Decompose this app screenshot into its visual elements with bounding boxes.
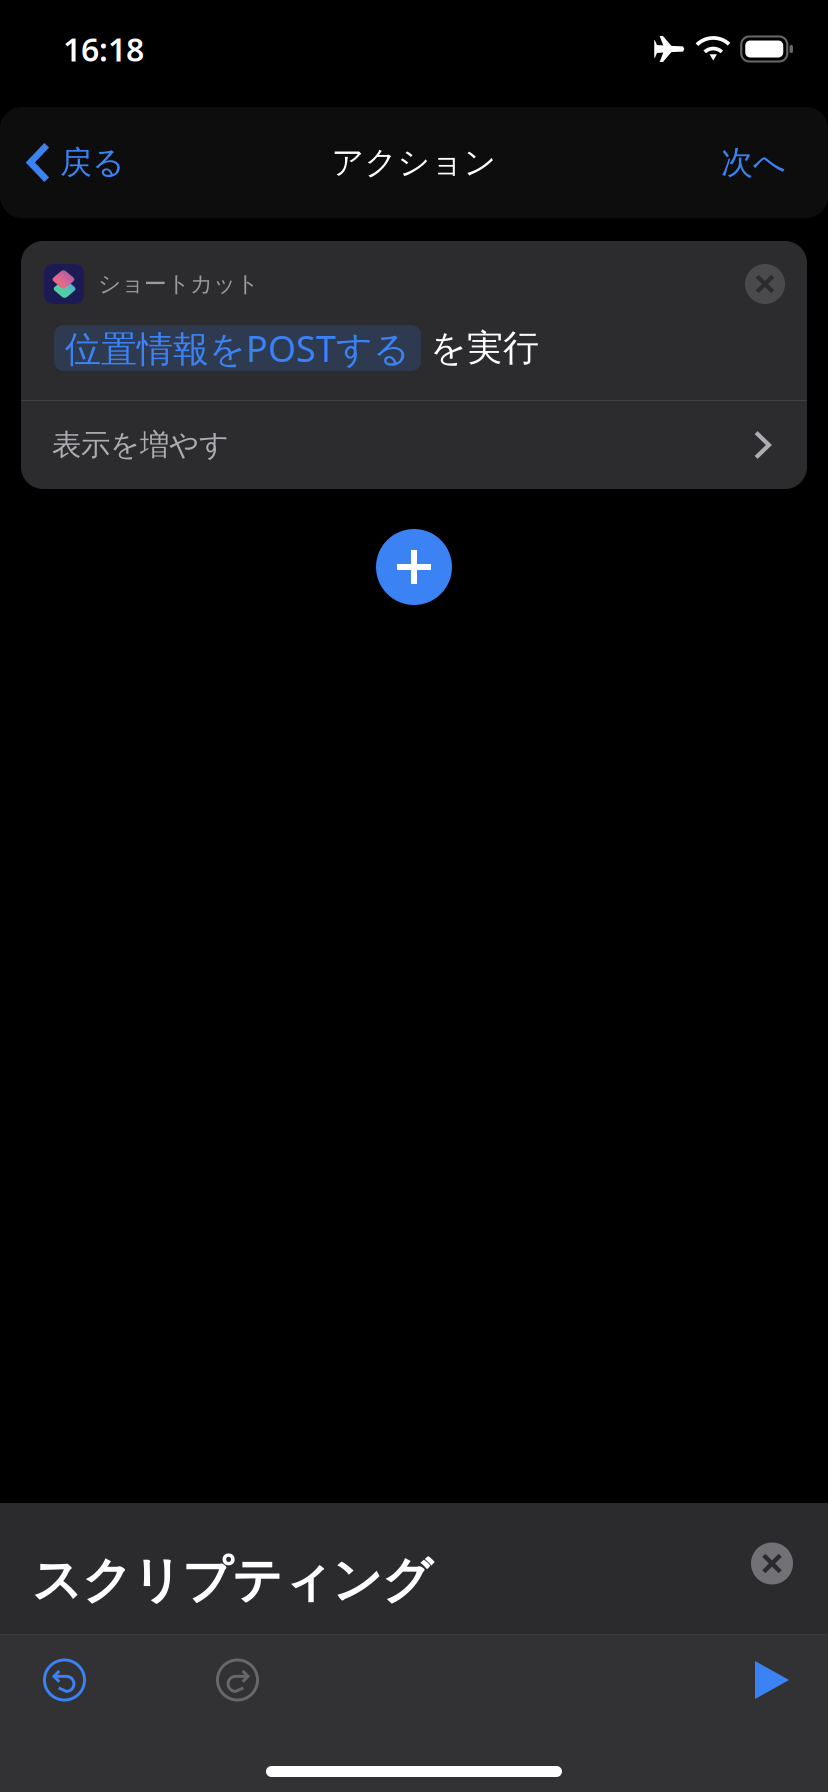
staticText: 16:18 (63, 28, 144, 70)
button[interactable]: 表示を増やす (21, 401, 807, 489)
button[interactable]: 取り消す (31, 1646, 98, 1713)
staticText: スクリプティング (32, 1550, 432, 1611)
staticText: 戻る (60, 143, 125, 182)
staticText: 表示を増やす (52, 427, 229, 463)
button[interactable]: 戻る (0, 117, 143, 207)
staticText: を実行 (430, 326, 539, 370)
button[interactable]: アクションを追加 (376, 529, 452, 605)
button[interactable]: 次へ (700, 117, 807, 207)
button[interactable]: このアクションを削除 (745, 264, 785, 304)
staticText: 位置情報をPOSTする (65, 324, 410, 372)
staticText: アクション (331, 143, 496, 182)
button[interactable]: 実行 (743, 1649, 801, 1711)
button[interactable]: やり直す (204, 1646, 271, 1713)
staticText: ショートカット (98, 270, 259, 298)
button[interactable]: 閉じる (751, 1542, 793, 1594)
staticText: 次へ (721, 143, 786, 182)
